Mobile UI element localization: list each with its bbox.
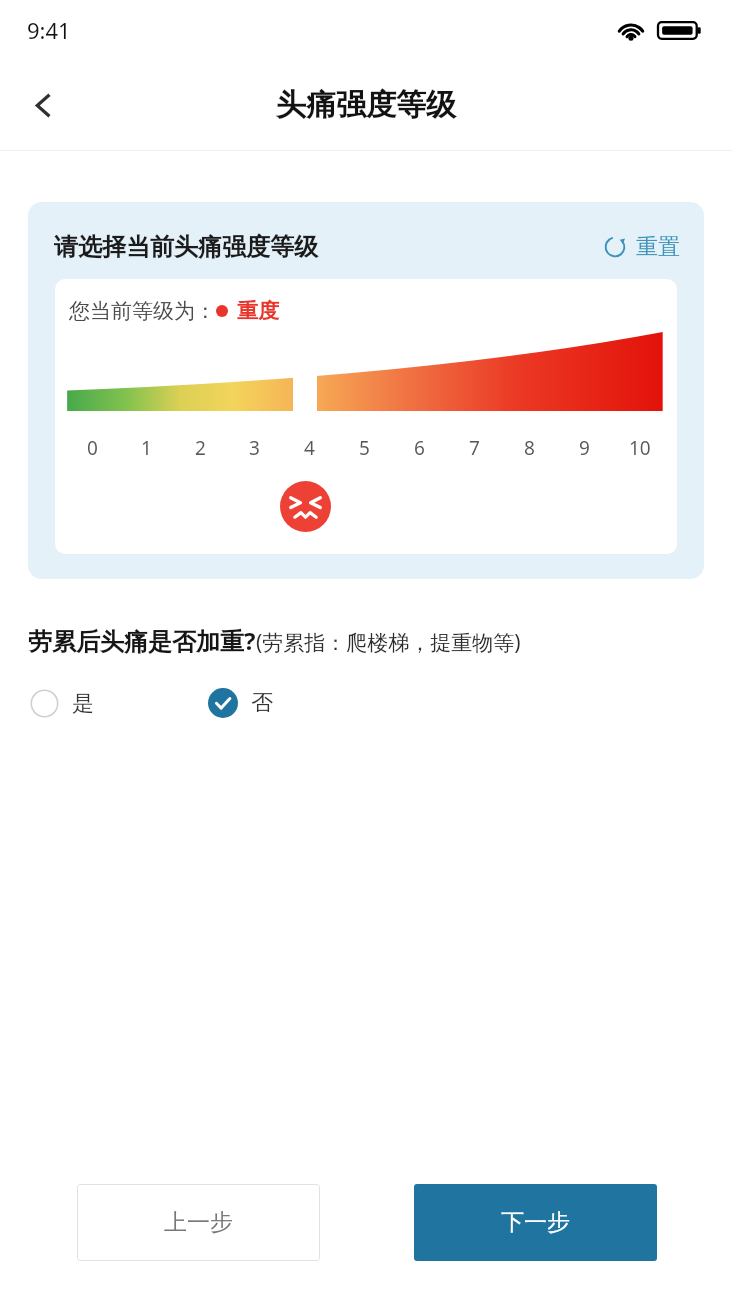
staticText: 1 — [141, 435, 152, 461]
button[interactable]: 是 — [28, 683, 96, 724]
button[interactable]: 下一步 — [414, 1184, 657, 1261]
button[interactable]: 否 — [206, 682, 275, 724]
staticText: 9:41 — [27, 15, 71, 45]
staticText: 4 — [304, 435, 315, 461]
staticText: 上一步 — [164, 1208, 233, 1237]
staticText: 重置 — [636, 233, 680, 261]
staticText: 否 — [251, 689, 273, 717]
staticText: 请选择当前头痛强度等级 — [54, 232, 318, 262]
staticText: 5 — [359, 435, 370, 461]
staticText: 重度 — [237, 298, 279, 324]
staticText: 是 — [72, 690, 94, 718]
staticText: 3 — [249, 435, 260, 461]
staticText: 7 — [469, 435, 480, 461]
staticText: 劳累后头痛是否加重? — [28, 624, 256, 657]
staticText: 6 — [414, 435, 425, 461]
staticText: 2 — [195, 435, 206, 461]
staticText: 10 — [629, 435, 651, 461]
button[interactable]: 重置 — [598, 227, 684, 267]
staticText: 头痛强度等级 — [276, 86, 456, 124]
button[interactable]: 上一步 — [77, 1184, 320, 1261]
staticText: 下一步 — [501, 1208, 570, 1237]
staticText: 0 — [87, 435, 98, 461]
staticText: 9 — [579, 435, 590, 461]
button[interactable]: Back — [12, 74, 74, 136]
staticText: 8 — [524, 435, 535, 461]
staticText: 您当前等级为： — [69, 298, 216, 324]
staticText: (劳累指：爬楼梯，提重物等) — [256, 628, 521, 657]
